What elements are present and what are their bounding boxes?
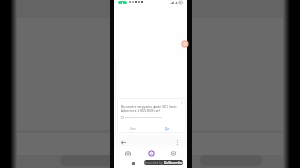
button[interactable]: Нет <box>128 125 138 133</box>
button[interactable]: Back <box>118 137 128 147</box>
button[interactable]: Home <box>123 148 133 158</box>
staticText: Adventure 2 RUS-ROR.rar? <box>121 109 161 113</box>
staticText: Вы хотите загрузить файл (DC) Sonic <box>121 105 177 109</box>
button[interactable]: Tabs <box>168 148 178 158</box>
staticText: Да <box>165 127 170 131</box>
staticText: DuRecorder <box>164 161 183 165</box>
button[interactable]: Да <box>163 125 172 133</box>
staticText: Recorded by <box>144 161 164 165</box>
button[interactable]: Assistant <box>146 148 156 158</box>
staticText: Всегда открывать в этом приложении <box>125 116 162 119</box>
button[interactable]: Всегда открывать в этом приложении <box>121 116 162 119</box>
staticText: Нет <box>130 127 136 131</box>
button[interactable]: More options <box>172 137 182 147</box>
button[interactable]: Floating action <box>180 39 190 49</box>
